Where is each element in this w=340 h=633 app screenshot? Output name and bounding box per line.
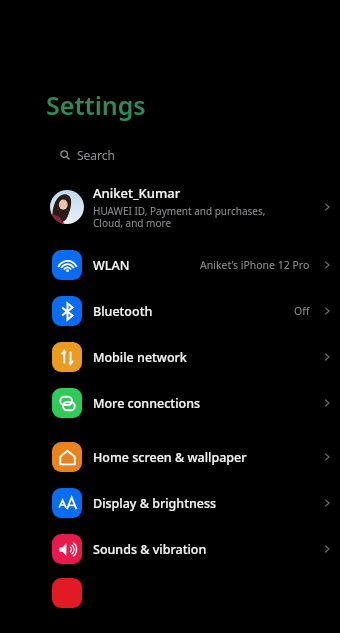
staticText: Sounds & vibration <box>93 541 314 558</box>
button[interactable]: More connections <box>0 380 340 426</box>
button[interactable] <box>0 572 340 618</box>
button[interactable]: WLAN <box>0 242 340 288</box>
staticText: Aniket_Kumar <box>93 184 181 202</box>
staticText: Home screen & wallpaper <box>93 449 314 466</box>
staticText: Mobile network <box>93 349 314 366</box>
button[interactable]: Aniket_Kumar <box>0 182 340 232</box>
button[interactable]: Home screen & wallpaper <box>0 434 340 480</box>
staticText: Off <box>294 304 310 318</box>
staticText: Aniket’s iPhone 12 Pro <box>200 258 310 272</box>
staticText: Search <box>77 147 115 163</box>
staticText: WLAN <box>93 257 200 274</box>
button[interactable]: Sounds & vibration <box>0 526 340 572</box>
button[interactable]: Search <box>0 142 340 168</box>
staticText: Settings <box>46 88 146 122</box>
staticText: Display & brightness <box>93 495 314 512</box>
button[interactable]: Mobile network <box>0 334 340 380</box>
staticText: More connections <box>93 395 314 412</box>
button[interactable]: Display & brightness <box>0 480 340 526</box>
staticText: Bluetooth <box>93 303 294 320</box>
staticText: HUAWEI ID, Payment and purchases, Cloud,… <box>93 204 266 230</box>
button[interactable]: Bluetooth <box>0 288 340 334</box>
